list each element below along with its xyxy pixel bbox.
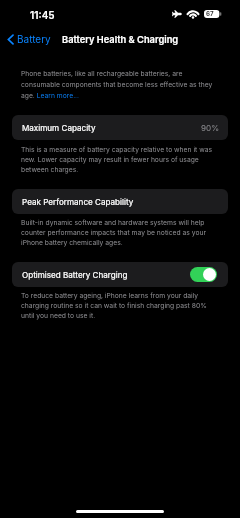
staticText: Battery Health & Charging: [62, 34, 179, 45]
button[interactable]: Peak Performance Capability: [12, 189, 228, 214]
button[interactable]: Optimised Battery Charging toggle: [190, 267, 217, 282]
staticText: 11:45: [30, 9, 55, 21]
staticText: This is a measure of battery capacity re…: [21, 144, 218, 174]
button[interactable]: Maximum Capacity: [12, 115, 228, 140]
staticText: Optimised Battery Charging: [22, 270, 128, 280]
staticText: Maximum Capacity: [22, 123, 96, 133]
button[interactable]: Battery: [0, 31, 57, 47]
staticText: Peak Performance Capability: [22, 197, 134, 207]
staticText: 67: [206, 10, 214, 18]
staticText: To reduce battery ageing, iPhone learns …: [21, 290, 218, 320]
staticText: 90%: [201, 123, 220, 133]
button[interactable]: Optimised Battery Charging: [12, 262, 228, 287]
staticText: Built-in dynamic software and hardware s…: [21, 217, 218, 247]
staticText: Phone batteries, like all rechargeable b…: [21, 67, 218, 100]
staticText: Battery: [17, 33, 51, 45]
